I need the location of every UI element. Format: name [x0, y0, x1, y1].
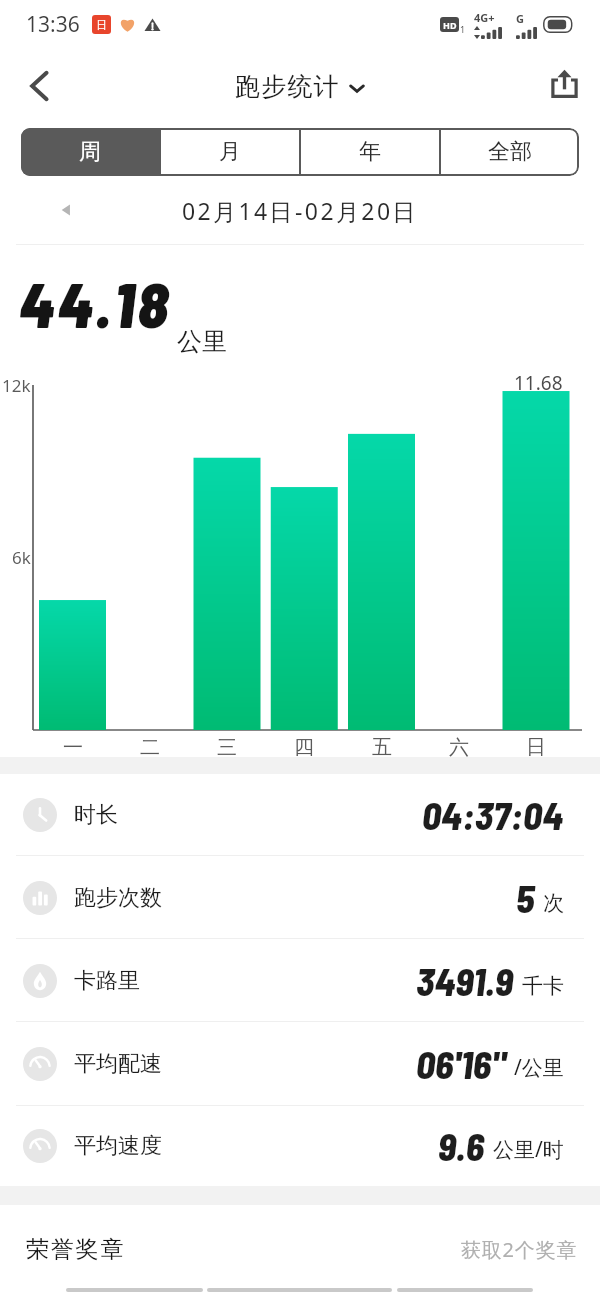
- staticText: 44.18: [19, 266, 171, 340]
- button[interactable]: 时长: [0, 774, 600, 856]
- staticText: HD: [443, 19, 457, 31]
- staticText: G: [516, 11, 524, 26]
- staticText: 四: [294, 735, 314, 760]
- staticText: 06'16": [416, 1041, 506, 1087]
- staticText: 日: [96, 18, 107, 32]
- staticText: 次: [543, 890, 564, 916]
- button[interactable]: 跑步统计: [235, 71, 365, 102]
- staticText: 二: [140, 735, 160, 760]
- button[interactable]: 跑步次数: [0, 856, 600, 939]
- staticText: 平均速度: [74, 1132, 162, 1160]
- button[interactable]: 卡路里: [0, 939, 600, 1022]
- staticText: 三: [217, 735, 237, 760]
- button[interactable]: 荣誉奖章: [0, 1208, 600, 1290]
- staticText: 6k: [12, 546, 31, 569]
- staticText: 日: [526, 735, 546, 760]
- staticText: 千卡: [522, 973, 564, 999]
- button[interactable]: Share: [537, 55, 591, 109]
- staticText: 04:37:04: [422, 792, 564, 838]
- staticText: 平均配速: [74, 1050, 162, 1078]
- staticText: 公里: [177, 326, 227, 357]
- staticText: 周: [79, 138, 101, 166]
- staticText: 11.68: [514, 370, 563, 396]
- staticText: 一: [63, 735, 83, 760]
- staticText: 13:36: [26, 10, 80, 39]
- staticText: 02月14日-02月20日: [182, 195, 418, 226]
- staticText: 全部: [488, 138, 532, 166]
- staticText: 公里/时: [493, 1135, 564, 1164]
- staticText: 获取2个奖章: [461, 1236, 578, 1263]
- staticText: 卡路里: [74, 967, 140, 995]
- staticText: 月: [219, 138, 241, 166]
- staticText: 五: [372, 735, 392, 760]
- staticText: /公里: [514, 1053, 564, 1082]
- staticText: 4G+: [474, 10, 495, 25]
- button[interactable]: 全部: [441, 128, 579, 176]
- staticText: 时长: [74, 801, 118, 829]
- staticText: 1: [460, 23, 466, 35]
- button[interactable]: 周: [21, 128, 159, 176]
- button[interactable]: 年: [301, 128, 439, 176]
- button[interactable]: 平均速度: [0, 1106, 600, 1186]
- staticText: 12k: [2, 374, 31, 397]
- staticText: 3491.9: [416, 958, 514, 1004]
- staticText: 六: [449, 735, 469, 760]
- button[interactable]: 平均配速: [0, 1022, 600, 1106]
- staticText: 荣誉奖章: [26, 1235, 126, 1264]
- staticText: 5: [516, 875, 535, 921]
- staticText: 跑步统计: [235, 71, 340, 102]
- staticText: 年: [359, 138, 381, 166]
- button[interactable]: Back: [12, 59, 66, 113]
- button[interactable]: 月: [161, 128, 299, 176]
- button[interactable]: Previous period: [48, 192, 84, 228]
- staticText: 9.6: [438, 1123, 485, 1169]
- staticText: 跑步次数: [74, 884, 162, 912]
